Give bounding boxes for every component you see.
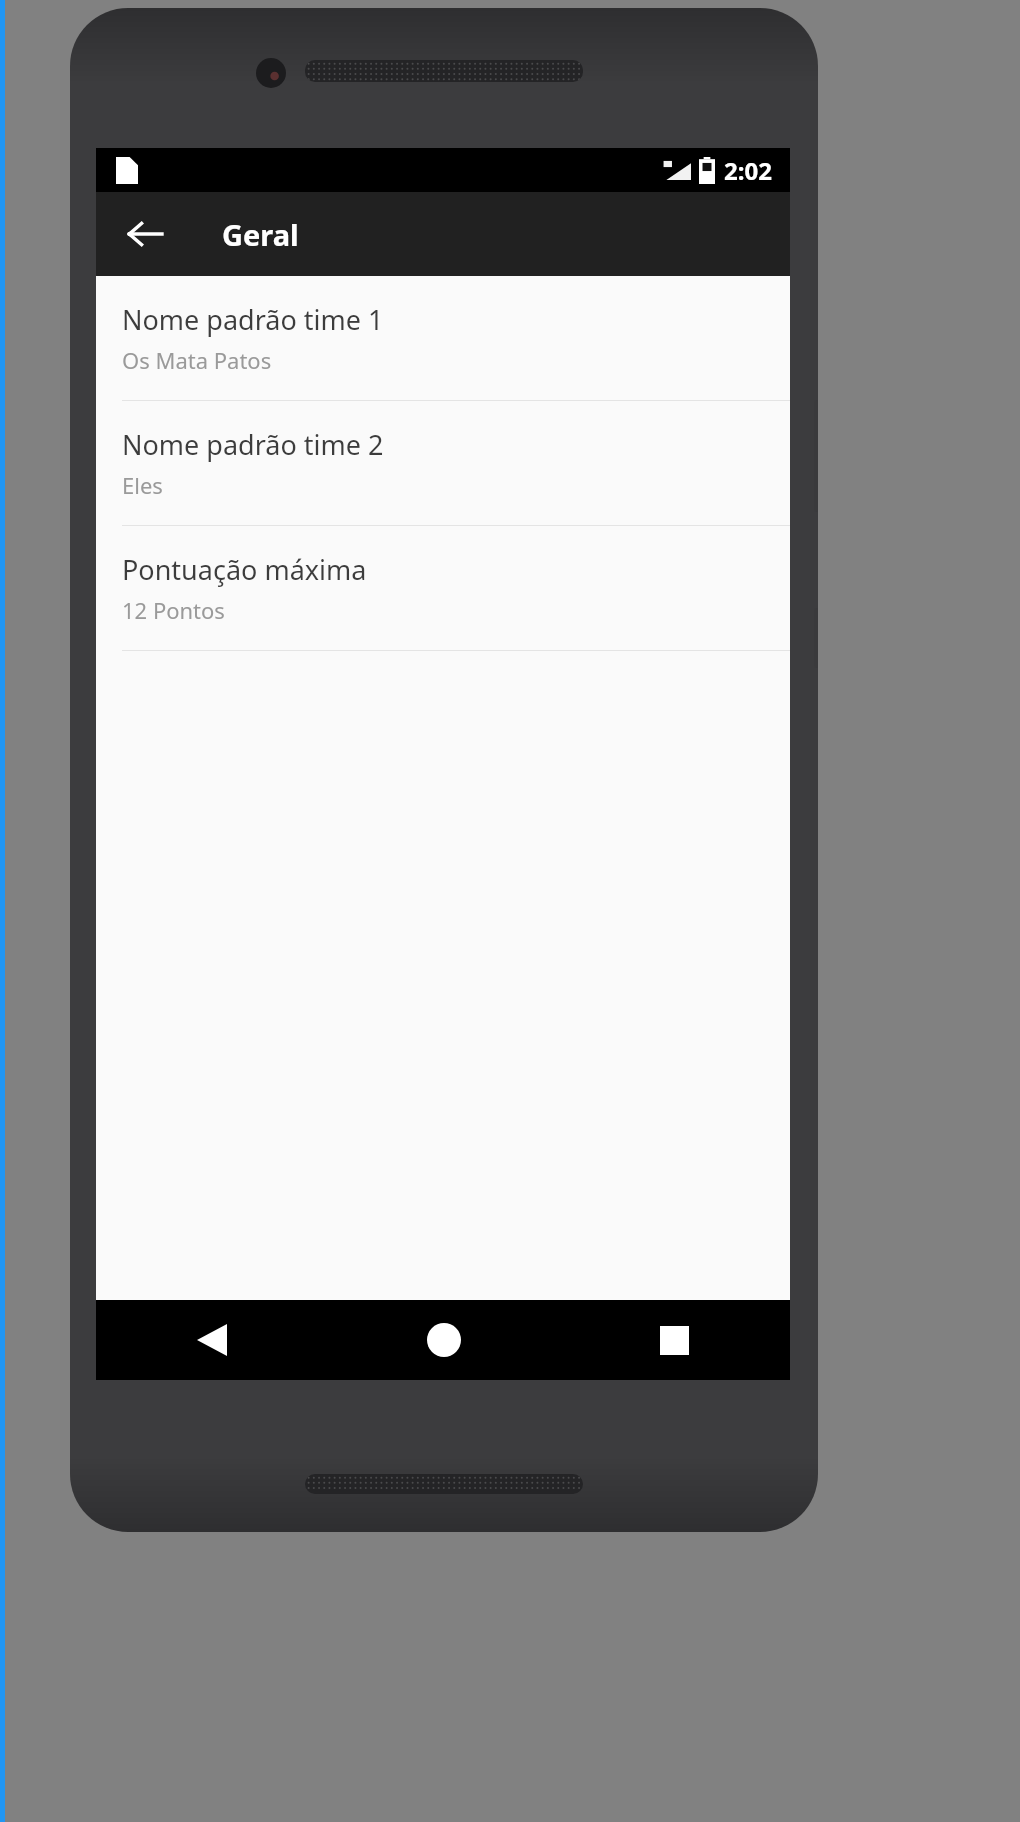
staticText: Nome padrão time 1	[122, 301, 384, 338]
button[interactable]: Nome padrão time 1	[96, 276, 790, 400]
button[interactable]: Home	[328, 1300, 559, 1380]
staticText: Pontuação máxima	[122, 551, 367, 588]
staticText: Eles	[122, 470, 163, 500]
button[interactable]: Pontuação máxima	[96, 526, 790, 650]
button[interactable]: Recent apps	[559, 1300, 790, 1380]
button[interactable]: Nome padrão time 2	[96, 401, 790, 525]
staticText: 12 Pontos	[122, 595, 225, 625]
button[interactable]: Back	[116, 205, 174, 263]
staticText: Nome padrão time 2	[122, 426, 384, 463]
staticText: Os Mata Patos	[122, 345, 272, 375]
button[interactable]: Back	[96, 1300, 328, 1380]
staticText: Geral	[222, 215, 299, 254]
staticText: 2:02	[724, 154, 772, 187]
